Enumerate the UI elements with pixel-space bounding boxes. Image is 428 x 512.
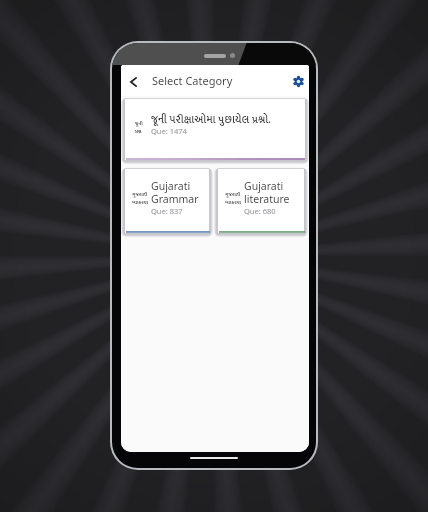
staticText: જૂની પરીક્ષાઓમા પુછાયેલ પ્રશ્નો.	[151, 111, 271, 128]
staticText: literature	[244, 192, 290, 206]
staticText: ગુજરાતી	[132, 190, 148, 198]
staticText: Que: 1474	[151, 126, 187, 136]
staticText: Grammar	[151, 192, 199, 206]
staticText: Que: 837	[151, 206, 183, 216]
button[interactable]: ગુજરાતી	[125, 169, 209, 233]
staticText: Gujarati	[244, 179, 284, 193]
staticText: ગુજરાતી	[225, 190, 241, 198]
staticText: Que: 680	[244, 206, 276, 216]
button[interactable]: જૂની	[125, 99, 305, 160]
staticText: Gujarati	[151, 179, 191, 193]
button[interactable]: Back	[123, 72, 143, 92]
button[interactable]: Settings	[288, 71, 308, 91]
staticText: વ્યાકરણ	[132, 198, 148, 206]
staticText: પ્રશ્ન	[135, 127, 142, 135]
staticText: Select Category	[152, 73, 233, 88]
staticText: જૂની	[135, 119, 143, 127]
staticText: વ્યાકરણ	[225, 198, 241, 206]
button[interactable]: ગુજરાતી	[218, 169, 304, 233]
